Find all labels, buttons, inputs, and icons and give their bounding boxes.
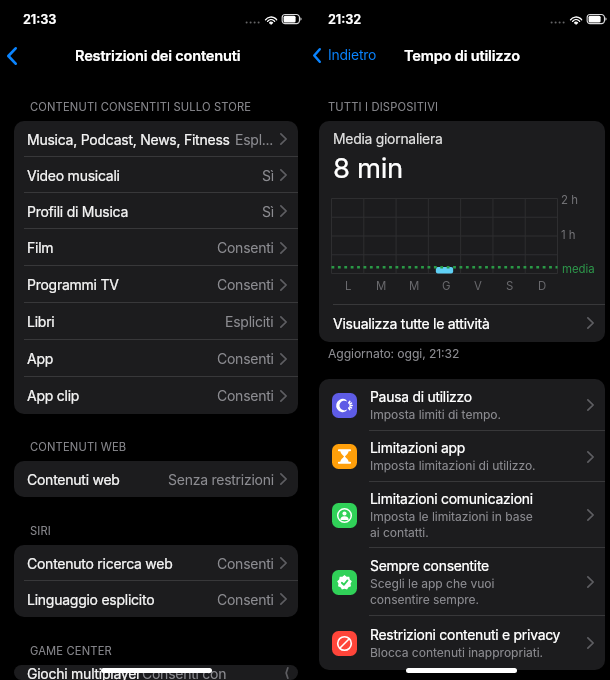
staticText: Scegli le app che vuoi consentire sempre… [370, 576, 495, 607]
staticText: Espliciti [225, 313, 274, 330]
staticText: V [474, 279, 482, 293]
staticText: Consenti [217, 276, 274, 293]
button[interactable]: Video musicali [14, 157, 298, 193]
button[interactable]: Back [0, 38, 24, 74]
staticText: 21:33 [23, 12, 57, 27]
staticText: Film [27, 239, 54, 256]
button[interactable]: Linguaggio esplicito [14, 581, 298, 617]
staticText: 21:32 [328, 12, 362, 27]
staticText: Sempre consentite [370, 558, 489, 575]
staticText: Senza restrizioni [168, 471, 274, 488]
staticText: Linguaggio esplicito [27, 591, 155, 608]
staticText: Sì [262, 203, 274, 220]
staticText: Giochi multiplayer [27, 665, 142, 680]
staticText: Profili di Musica [27, 203, 129, 220]
staticText: CONTENUTI CONSENTITI SULLO STORE [30, 100, 252, 114]
staticText: Consenti [217, 555, 274, 572]
button[interactable]: Giochi multiplayer [14, 665, 298, 680]
staticText: media [562, 262, 595, 276]
button[interactable]: Programmi TV [14, 266, 298, 303]
staticText: M [376, 279, 387, 293]
staticText: Programmi TV [27, 276, 119, 293]
button[interactable]: Profili di Musica [14, 193, 298, 229]
staticText: Imposta limitazioni di utilizzo. [370, 458, 536, 473]
button[interactable]: Contenuto ricerca web [14, 545, 298, 581]
staticText: Pausa di utilizzo [370, 389, 472, 406]
staticText: Media giornaliera [333, 131, 443, 148]
staticText: Indietro [328, 47, 377, 64]
staticText: Restrizioni dei contenuti [75, 47, 241, 65]
staticText: 8 min [333, 151, 403, 184]
staticText: M [409, 279, 420, 293]
staticText: Espl... [235, 131, 274, 148]
button[interactable]: Indietro [310, 43, 383, 68]
staticText: Consenti [217, 387, 274, 404]
button[interactable]: Limitazioni app [319, 431, 605, 482]
button[interactable]: App clip [14, 377, 298, 414]
staticText: D [538, 279, 547, 293]
staticText: Consenti [217, 239, 274, 256]
staticText: Contenuto ricerca web [27, 555, 173, 572]
staticText: Consenti con chiunque [142, 665, 287, 680]
button[interactable]: Restrizioni contenuti e privacy [319, 616, 605, 670]
staticText: Video musicali [27, 167, 120, 184]
staticText: Sì [262, 167, 274, 184]
button[interactable]: Sempre consentite [319, 548, 605, 616]
staticText: Libri [27, 313, 55, 330]
staticText: Limitazioni app [370, 440, 466, 457]
staticText: Consenti [217, 591, 274, 608]
staticText: Aggiornato: oggi, 21:32 [328, 346, 460, 361]
button[interactable]: Film [14, 229, 298, 266]
button[interactable]: Musica, Podcast, News, Fitness [14, 121, 298, 157]
staticText: Restrizioni contenuti e privacy [370, 627, 561, 644]
button[interactable]: Pausa di utilizzo [319, 379, 605, 431]
button[interactable]: App [14, 340, 298, 377]
staticText: L [345, 279, 352, 293]
staticText: Musica, Podcast, News, Fitness [27, 131, 230, 148]
staticText: Contenuti web [27, 471, 120, 488]
staticText: Blocca contenuti inappropriati. [370, 645, 543, 660]
staticText: TUTTI I DISPOSITIVI [328, 100, 439, 114]
staticText: SIRI [30, 524, 51, 538]
staticText: Limitazioni comunicazioni [370, 491, 533, 508]
staticText: 1 h [561, 228, 576, 242]
staticText: GAME CENTER [30, 644, 112, 658]
staticText: App [27, 350, 54, 367]
staticText: 2 h [561, 193, 578, 207]
button[interactable]: Visualizza tutte le attività [319, 304, 605, 342]
staticText: Visualizza tutte le attività [333, 315, 490, 332]
staticText: Imposta le limitazioni in base ai contat… [370, 509, 533, 540]
staticText: CONTENUTI WEB [30, 440, 127, 454]
button[interactable]: Libri [14, 303, 298, 340]
button[interactable]: Contenuti web [14, 461, 298, 497]
staticText: Consenti [217, 350, 274, 367]
staticText: S [506, 279, 514, 293]
button[interactable]: Limitazioni comunicazioni [319, 482, 605, 548]
staticText: G [442, 279, 451, 293]
staticText: App clip [27, 387, 80, 404]
staticText: Tempo di utilizzo [404, 47, 520, 65]
staticText: Imposta limiti di tempo. [370, 407, 501, 422]
